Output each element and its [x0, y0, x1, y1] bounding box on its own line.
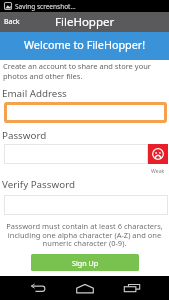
staticText: Password must contain at least 6 charact…: [4, 221, 165, 248]
staticText: Create an account to share and store you…: [3, 61, 155, 81]
staticText: Verify Password: [2, 178, 76, 191]
button[interactable]: Home: [68, 277, 102, 299]
button[interactable]: Recent apps: [115, 277, 148, 299]
staticText: FileHopper: [55, 14, 115, 30]
button[interactable]: [4, 195, 168, 215]
staticText: Welcome to FileHopper!: [24, 37, 146, 52]
staticText: Weak: [151, 167, 165, 174]
staticText: Email Address: [2, 87, 67, 100]
other: Password strength: weak: [148, 144, 168, 164]
staticText: Password: [2, 129, 47, 142]
button[interactable]: Sign Up: [31, 254, 139, 271]
staticText: Back: [4, 17, 20, 27]
staticText: Saving screenshot…: [15, 2, 76, 11]
button[interactable]: [4, 102, 167, 123]
button[interactable]: [4, 144, 148, 164]
staticText: Sign Up: [72, 258, 99, 268]
button[interactable]: Back: [21, 277, 54, 299]
button[interactable]: Back: [4, 17, 20, 27]
